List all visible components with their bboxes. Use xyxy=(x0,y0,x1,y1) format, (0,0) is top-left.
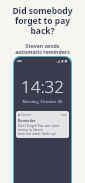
staticText: Monday, October 26 xyxy=(14,99,71,105)
staticText: Steven xyxy=(21,113,32,117)
staticText: Did somebody forget to pay back? xyxy=(3,5,82,37)
staticText: Reminder xyxy=(18,118,36,123)
staticText: now xyxy=(61,113,67,117)
staticText: Don't forget! You owe some money to Stev… xyxy=(18,124,67,136)
staticText: 14:32 xyxy=(14,75,71,98)
staticText: Steven sends automatic reminders xyxy=(3,42,82,56)
button[interactable]: Steven xyxy=(16,111,69,138)
